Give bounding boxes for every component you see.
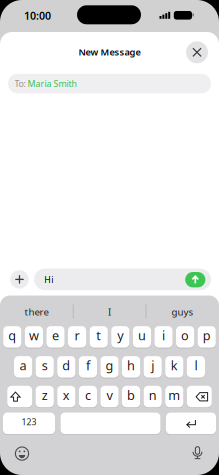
staticText: w	[29, 327, 39, 344]
staticText: l	[194, 357, 197, 374]
staticText: guys	[171, 305, 193, 318]
staticText: z	[42, 386, 48, 404]
staticText: I	[108, 305, 111, 318]
staticText: k	[171, 357, 178, 374]
staticText: n	[149, 386, 157, 404]
staticText: e	[52, 327, 59, 344]
staticText: b	[127, 386, 135, 404]
staticText: s	[42, 357, 48, 374]
staticText: To:	[14, 78, 25, 90]
staticText: g	[105, 357, 113, 374]
staticText: i	[162, 327, 165, 344]
staticText: c	[85, 386, 91, 404]
staticText: x	[63, 386, 70, 404]
staticText: there	[24, 305, 48, 318]
staticText: Hi	[44, 274, 53, 286]
staticText: Maria Smith	[27, 78, 76, 90]
staticText: t	[96, 327, 101, 344]
staticText: j	[151, 357, 154, 374]
staticText: q	[8, 327, 16, 344]
staticText: a	[20, 357, 27, 374]
staticText: New Message	[78, 45, 140, 58]
staticText: m	[168, 386, 180, 404]
staticText: u	[138, 327, 146, 344]
staticText: o	[181, 327, 189, 344]
staticText: 123	[21, 416, 36, 428]
staticText: v	[106, 386, 112, 404]
staticText: h	[127, 357, 135, 374]
staticText: y	[117, 327, 123, 344]
staticText: f	[86, 357, 90, 374]
staticText: d	[62, 357, 70, 374]
staticText: r	[75, 327, 80, 344]
staticText: p	[203, 327, 211, 344]
staticText: 10:00	[24, 8, 51, 23]
